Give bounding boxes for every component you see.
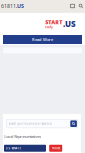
- staticText: .US: [63, 18, 76, 29]
- button[interactable]: Search: [77, 0, 85, 12]
- button[interactable]: Tabs: [68, 0, 77, 12]
- button[interactable]: HOUSE: [49, 145, 62, 152]
- staticText: .US: [16, 2, 24, 10]
- staticText: Search your business or address: [9, 122, 52, 125]
- button[interactable]: Read More: [0, 35, 85, 45]
- staticText: 61811: [1, 2, 16, 10]
- button[interactable]: U.S. SENATE: [4, 145, 46, 152]
- staticText: Local Representatives: [4, 134, 41, 139]
- staticText: HOUSE: [52, 146, 60, 150]
- button[interactable]: 61811: [0, 0, 34, 12]
- staticText: START: [45, 19, 62, 26]
- staticText: U.S. SENATE: [6, 146, 21, 150]
- button[interactable]: Search: [70, 120, 77, 127]
- button[interactable]: START: [45, 18, 76, 29]
- staticText: Read More: [32, 37, 53, 42]
- staticText: early: [45, 25, 53, 29]
